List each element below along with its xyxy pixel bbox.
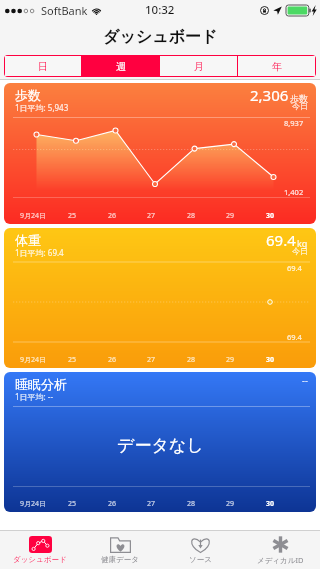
staticText: 29	[226, 211, 235, 221]
staticText: 月	[194, 60, 204, 73]
staticText: 26	[108, 499, 117, 509]
staticText: 28	[187, 499, 196, 509]
staticText: データなし	[117, 435, 204, 456]
staticText: 睡眠分析	[15, 376, 67, 392]
staticText: 27	[147, 211, 156, 221]
staticText: 体重	[15, 232, 41, 248]
staticText: 9月24日	[20, 355, 47, 365]
button[interactable]: 月	[160, 56, 237, 76]
staticText: ダッシュボード	[103, 27, 218, 47]
staticText: 歩数	[15, 87, 41, 103]
staticText: 2,306	[250, 85, 289, 105]
staticText: 10:32	[145, 2, 175, 18]
staticText: 69.4	[266, 230, 296, 250]
staticText: ソース	[189, 555, 212, 564]
staticText: 28	[187, 211, 196, 221]
staticText: 30	[266, 211, 275, 221]
staticText: 27	[147, 355, 156, 365]
staticText: 26	[108, 211, 117, 221]
staticText: 1,402	[284, 187, 304, 197]
staticText: 1日平均: --	[15, 391, 53, 402]
staticText: 25	[68, 355, 77, 365]
staticText: --	[302, 374, 308, 386]
button[interactable]: Sources	[160, 531, 240, 569]
staticText: 健康データ	[101, 555, 139, 564]
button[interactable]: 8,937	[4, 83, 316, 224]
staticText: 25	[68, 211, 77, 221]
staticText: 28	[187, 355, 196, 365]
staticText: 年	[272, 60, 282, 73]
button[interactable]: 週	[82, 56, 159, 76]
staticText: 1日平均: 69.4	[15, 247, 64, 258]
staticText: kg	[297, 237, 308, 249]
staticText: 69.4	[287, 332, 302, 342]
staticText: ダッシュボード	[13, 555, 67, 564]
staticText: 9月24日	[20, 211, 47, 221]
staticText: 30	[266, 355, 275, 365]
staticText: 25	[68, 499, 77, 509]
button[interactable]: Dashboard	[0, 531, 80, 569]
staticText: 29	[226, 355, 235, 365]
staticText: 8,937	[284, 118, 304, 128]
staticText: SoftBank	[41, 3, 88, 18]
button[interactable]: Medical ID	[240, 531, 320, 569]
staticText: 30	[266, 499, 275, 509]
button[interactable]: Health Data	[80, 531, 160, 569]
staticText: 26	[108, 355, 117, 365]
staticText: メディカルID	[257, 555, 304, 565]
staticText: 1日平均: 5,943	[15, 102, 69, 113]
staticText: 今日	[292, 101, 308, 111]
button[interactable]: データなし	[4, 372, 316, 512]
staticText: 69.4	[287, 263, 302, 273]
staticText: 週	[116, 60, 126, 73]
staticText: 9月24日	[20, 499, 47, 509]
button[interactable]: 年	[238, 56, 315, 76]
staticText: 日	[38, 60, 48, 73]
staticText: 歩数	[290, 93, 308, 104]
staticText: 29	[226, 499, 235, 509]
button[interactable]: 69.4	[4, 228, 316, 368]
staticText: 今日	[292, 246, 308, 256]
staticText: 27	[147, 499, 156, 509]
button[interactable]: 日	[5, 56, 81, 76]
